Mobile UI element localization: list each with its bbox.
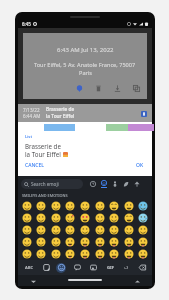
staticText: Tour Eiffel, 5 Av. Anatole France, 75007 — [34, 61, 136, 69]
button[interactable]: Emoji — [108, 224, 120, 236]
button[interactable]: Emoji — [94, 236, 106, 248]
button[interactable]: Emoji — [64, 200, 76, 212]
button[interactable]: Emoji — [64, 224, 76, 236]
button[interactable]: :-) — [120, 262, 132, 273]
staticText: 6:43 AM Jul 13, 2022 — [57, 46, 114, 54]
staticText: Brasserie de — [46, 106, 75, 113]
button[interactable]: Back — [30, 278, 36, 284]
button[interactable]: Photos — [87, 262, 99, 273]
button[interactable]: Animals — [120, 178, 131, 190]
button[interactable]: Emoji — [55, 262, 67, 273]
button[interactable]: Emoji — [79, 248, 91, 260]
staticText: List — [25, 134, 33, 140]
button[interactable]: Emoji — [123, 200, 135, 212]
button[interactable]: Emoji — [50, 224, 62, 236]
staticText: 7/13/22 — [23, 107, 40, 113]
button[interactable]: Emoji — [50, 200, 62, 212]
button[interactable]: Emoji — [123, 212, 135, 224]
button[interactable]: Save — [113, 84, 122, 93]
button[interactable]: CANCEL — [18, 161, 50, 170]
button[interactable]: Emoji — [137, 224, 149, 236]
button[interactable]: Food — [131, 178, 142, 190]
button[interactable]: Copy — [132, 84, 141, 93]
button[interactable]: 7/13/22 — [18, 104, 152, 122]
staticText: Paris — [79, 69, 92, 77]
staticText: OK — [136, 162, 144, 169]
button[interactable]: Emoji — [94, 212, 106, 224]
button[interactable]: GIF — [103, 262, 117, 273]
button[interactable]: People — [109, 178, 120, 190]
button[interactable]: ABC — [22, 262, 36, 273]
button[interactable]: Messages — [71, 262, 83, 273]
staticText: GIF — [107, 265, 114, 271]
button[interactable]: Emoji — [94, 200, 106, 212]
button[interactable]: Emoji — [50, 248, 62, 260]
button[interactable]: Keyboard settings — [134, 278, 140, 284]
button[interactable]: Emoji — [50, 236, 62, 248]
button[interactable]: Emoji — [21, 224, 33, 236]
button[interactable]: Emoji — [21, 200, 33, 212]
button[interactable]: Emoji — [137, 236, 149, 248]
button[interactable]: Stickers — [40, 262, 52, 273]
button[interactable]: Emoji — [123, 236, 135, 248]
button[interactable]: Emoji — [35, 212, 47, 224]
button[interactable]: Emoji — [35, 248, 47, 260]
button[interactable]: Emoji — [21, 248, 33, 260]
button[interactable]: Backspace — [136, 262, 148, 273]
button[interactable]: Emoji — [35, 236, 47, 248]
button[interactable]: Home — [68, 279, 102, 281]
staticText: 6:44 AM — [23, 113, 41, 119]
button[interactable]: Emoji — [94, 224, 106, 236]
button[interactable]: Open in maps — [75, 84, 84, 93]
staticText: Brasserie de — [25, 142, 61, 150]
staticText: 6:45 — [22, 21, 31, 27]
button[interactable]: Delete — [94, 84, 103, 93]
staticText: Search emoji — [31, 181, 59, 187]
button[interactable]: Emoji — [108, 200, 120, 212]
staticText: ABC — [25, 265, 34, 271]
button[interactable]: Recent — [87, 178, 98, 190]
button[interactable]: Emoji — [35, 200, 47, 212]
button[interactable]: Emoji — [79, 236, 91, 248]
button[interactable]: Emoji — [64, 236, 76, 248]
button[interactable]: Emoji — [108, 236, 120, 248]
button[interactable]: Emoji — [123, 224, 135, 236]
button[interactable]: Emoji — [108, 248, 120, 260]
button[interactable]: OK — [130, 161, 152, 170]
staticText: :-) — [124, 265, 128, 271]
button[interactable]: Emoji — [64, 248, 76, 260]
button[interactable]: Emoji — [137, 248, 149, 260]
staticText: la Tour Eiffel — [46, 113, 75, 120]
staticText: CANCEL — [25, 162, 44, 169]
button[interactable]: Emoji — [123, 248, 135, 260]
button[interactable]: Emoji — [50, 212, 62, 224]
button[interactable]: Emoji — [64, 212, 76, 224]
button[interactable]: Emoji — [79, 224, 91, 236]
button[interactable]: Smileys — [98, 178, 109, 190]
button[interactable]: Emoji — [21, 212, 33, 224]
button[interactable]: Emoji — [79, 200, 91, 212]
button[interactable]: Emoji — [35, 224, 47, 236]
staticText: la Tour Eiffel — [25, 150, 61, 158]
button[interactable]: Search emoji — [21, 179, 83, 189]
button[interactable]: Emoji — [108, 212, 120, 224]
button[interactable]: Calendar app — [140, 110, 147, 117]
button[interactable]: Emoji — [137, 200, 149, 212]
button[interactable]: Emoji — [79, 212, 91, 224]
button[interactable]: Emoji — [137, 212, 149, 224]
staticText: SMILEYS AND EMOTIONS — [22, 193, 68, 198]
button[interactable]: Emoji — [94, 248, 106, 260]
button[interactable]: Emoji — [21, 236, 33, 248]
